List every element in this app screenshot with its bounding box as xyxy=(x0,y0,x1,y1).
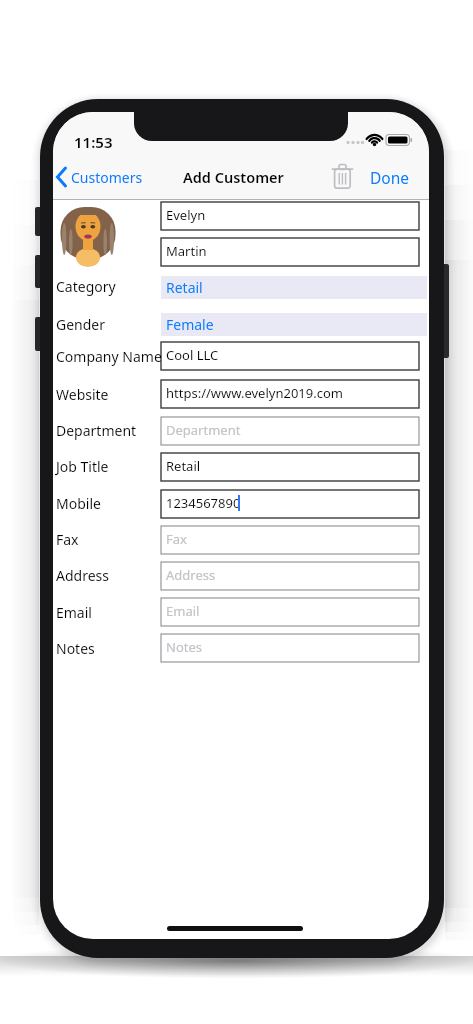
button[interactable]: Notes xyxy=(161,634,419,662)
staticText: Retail xyxy=(166,278,203,297)
staticText: Mobile xyxy=(56,494,101,513)
button[interactable]: Fax xyxy=(161,526,419,554)
button[interactable]: Done xyxy=(370,165,418,189)
staticText: Department xyxy=(166,421,241,439)
button[interactable]: Customers xyxy=(55,165,155,189)
button[interactable]: Retail xyxy=(161,453,419,481)
staticText: Notes xyxy=(56,639,95,658)
button[interactable]: https://www.evelyn2019.com xyxy=(161,380,419,408)
staticText: 1234567890 xyxy=(166,494,241,512)
button[interactable]: Female xyxy=(161,313,427,336)
staticText: Evelyn xyxy=(166,206,206,224)
staticText: Department xyxy=(56,421,137,440)
staticText: Gender xyxy=(56,315,106,334)
button[interactable]: Evelyn xyxy=(161,202,419,230)
button[interactable]: Martin xyxy=(161,238,419,266)
staticText: Address xyxy=(166,566,216,584)
staticText: Email xyxy=(56,603,92,622)
staticText: Add Customer xyxy=(183,167,284,187)
staticText: Category xyxy=(56,277,116,296)
staticText: Retail xyxy=(166,457,201,475)
staticText: https://www.evelyn2019.com xyxy=(166,384,343,402)
staticText: Customers xyxy=(71,168,143,187)
button[interactable]: Email xyxy=(161,598,419,626)
button[interactable]: Cool LLC xyxy=(161,342,419,370)
staticText: Cool LLC xyxy=(166,346,219,364)
staticText: Job Title xyxy=(56,457,109,476)
staticText: Notes xyxy=(166,638,202,656)
staticText: Fax xyxy=(166,530,187,548)
staticText: Fax xyxy=(56,530,79,549)
button[interactable]: 1234567890 xyxy=(161,490,419,518)
button[interactable] xyxy=(331,163,354,190)
staticText: Address xyxy=(56,566,109,585)
button[interactable]: Address xyxy=(161,562,419,590)
staticText: Martin xyxy=(166,242,207,260)
button[interactable]: Department xyxy=(161,417,419,445)
staticText: Done xyxy=(370,167,410,188)
staticText: Female xyxy=(166,315,214,334)
staticText: 11:53 xyxy=(74,132,113,152)
staticText: Website xyxy=(56,385,109,404)
staticText: Email xyxy=(166,602,200,620)
button[interactable]: Retail xyxy=(161,276,427,299)
button[interactable] xyxy=(58,207,118,261)
staticText: Company Name xyxy=(56,347,162,366)
